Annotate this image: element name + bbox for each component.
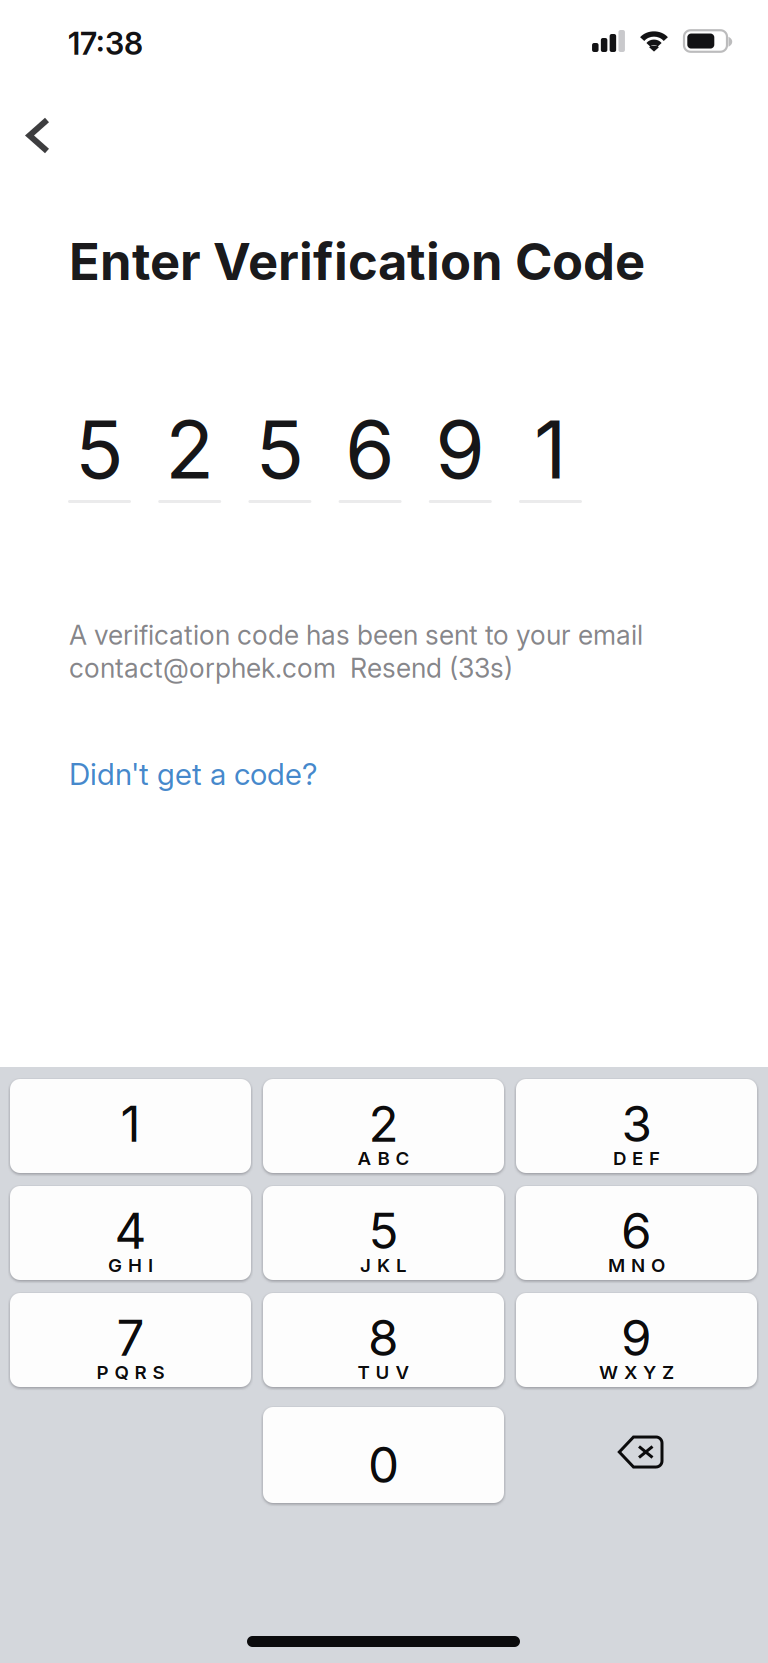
button[interactable]: 1 [10, 1079, 251, 1173]
staticText: Enter Verification Code [69, 231, 645, 292]
button[interactable]: 2 [263, 1079, 504, 1173]
staticText: 6 [345, 401, 395, 498]
staticText: D E F [613, 1147, 660, 1170]
staticText: 2 [368, 1094, 398, 1154]
staticText: 3 [621, 1094, 651, 1154]
staticText: 5 [75, 401, 124, 498]
staticText: 9 [621, 1308, 652, 1368]
staticText: 5 [255, 401, 304, 498]
button[interactable]: 7 [10, 1293, 251, 1387]
staticText: G H I [108, 1254, 153, 1277]
staticText: 1 [534, 401, 567, 498]
staticText: A B C [357, 1147, 409, 1170]
staticText: A verification code has been sent to you… [69, 619, 643, 651]
staticText: 17:38 [68, 25, 143, 62]
button[interactable]: 6 [516, 1186, 757, 1280]
staticText: Didn't get a code? [69, 756, 318, 792]
staticText: 2 [165, 401, 214, 498]
staticText: J K L [360, 1254, 407, 1277]
staticText: 7 [116, 1308, 144, 1368]
button[interactable]: 3 [516, 1079, 757, 1173]
button[interactable]: Delete [516, 1407, 757, 1503]
button[interactable]: Back [0, 102, 77, 169]
staticText: W X Y Z [599, 1361, 674, 1384]
staticText: M N O [608, 1254, 665, 1277]
button[interactable]: Didn't get a code? [65, 748, 322, 800]
staticText: 6 [621, 1201, 652, 1261]
staticText: 0 [368, 1435, 399, 1495]
button[interactable]: 4 [10, 1186, 251, 1280]
button[interactable]: 0 [263, 1407, 504, 1503]
staticText: T U V [357, 1361, 409, 1384]
staticText: 9 [435, 401, 485, 498]
button[interactable]: 8 [263, 1293, 504, 1387]
staticText: contact@orphek.com Resend (33s) [69, 652, 513, 684]
staticText: 1 [120, 1094, 140, 1154]
button[interactable]: 9 [516, 1293, 757, 1387]
staticText: 8 [368, 1308, 399, 1368]
staticText: 5 [368, 1201, 398, 1261]
button[interactable]: 5 [263, 1186, 504, 1280]
staticText: P Q R S [96, 1361, 164, 1384]
staticText: 4 [114, 1201, 146, 1261]
